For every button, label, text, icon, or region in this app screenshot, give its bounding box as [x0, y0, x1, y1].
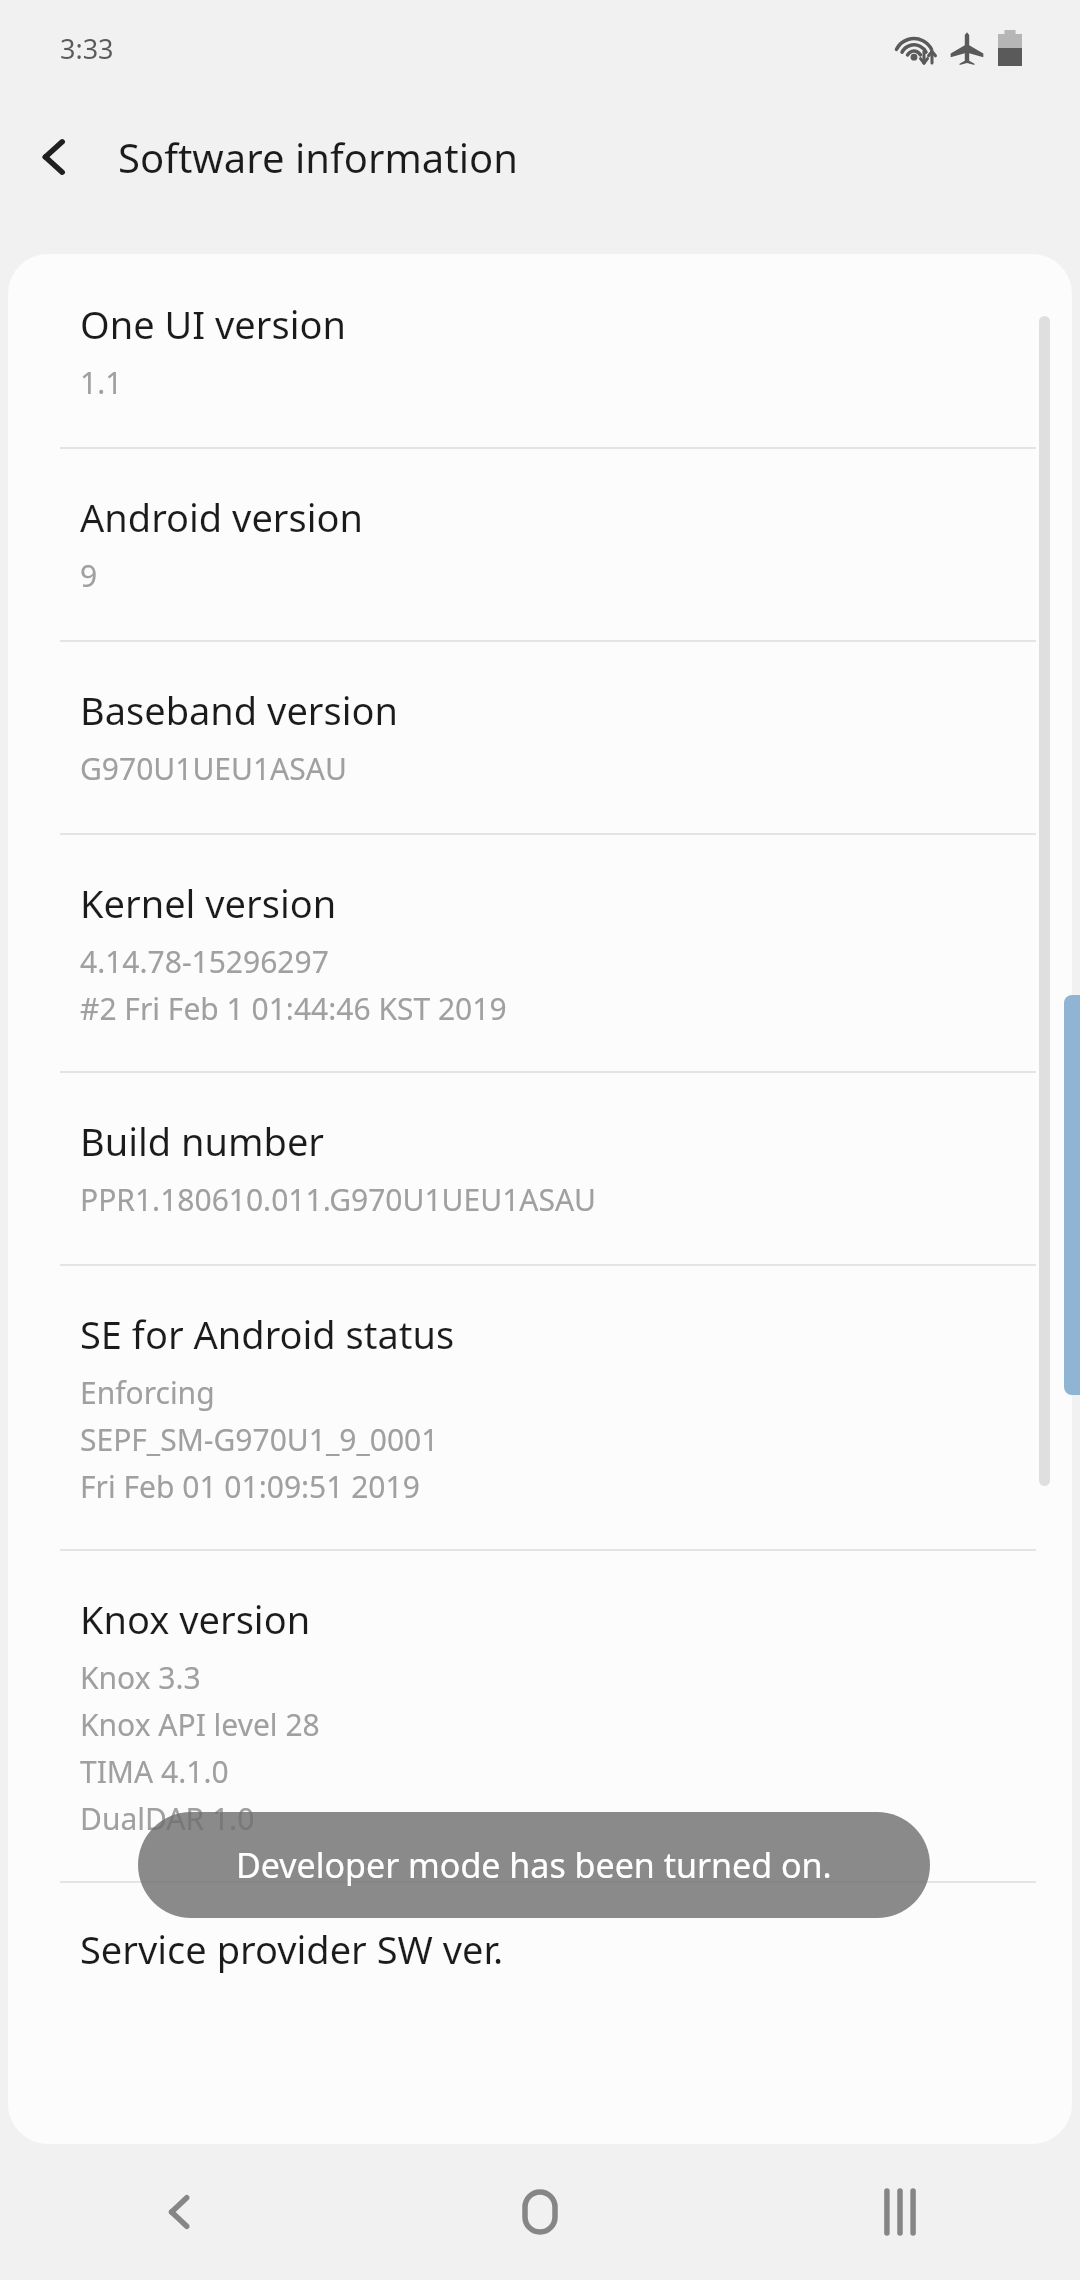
- staticText: Build number: [80, 1115, 325, 1167]
- staticText: 9: [80, 555, 98, 596]
- staticText: 3:33: [60, 30, 114, 67]
- staticText: Kernel version: [80, 877, 337, 929]
- button[interactable]: Kernel version: [8, 835, 1072, 1071]
- staticText: One UI version: [80, 298, 346, 350]
- button[interactable]: SE for Android status: [8, 1266, 1072, 1549]
- staticText: Fri Feb 01 01:09:51 2019: [80, 1466, 420, 1507]
- staticText: Knox API level 28: [80, 1704, 320, 1745]
- staticText: G970U1UEU1ASAU: [80, 748, 347, 789]
- button[interactable]: Recent apps: [720, 2144, 1080, 2280]
- staticText: 4.14.78-15296297: [80, 941, 329, 982]
- staticText: PPR1.180610.011.G970U1UEU1ASAU: [80, 1179, 597, 1220]
- staticText: Android version: [80, 491, 364, 543]
- button[interactable]: Back: [0, 102, 110, 212]
- button[interactable]: One UI version: [8, 254, 1072, 447]
- button[interactable]: Android version: [8, 449, 1072, 640]
- staticText: SE for Android status: [80, 1308, 455, 1360]
- button[interactable]: Back: [0, 2144, 360, 2280]
- staticText: Baseband version: [80, 684, 398, 736]
- staticText: Service provider SW ver.: [80, 1923, 504, 1975]
- staticText: DualDAR 1.0: [80, 1798, 255, 1839]
- staticText: Enforcing: [80, 1372, 215, 1413]
- staticText: Knox version: [80, 1593, 311, 1645]
- staticText: TIMA 4.1.0: [80, 1751, 229, 1792]
- staticText: Knox 3.3: [80, 1657, 201, 1698]
- staticText: 1.1: [80, 362, 123, 403]
- staticText: SEPF_SM-G970U1_9_0001: [80, 1419, 439, 1460]
- button[interactable]: Service provider SW ver.: [8, 1883, 1072, 2048]
- button[interactable]: Home: [360, 2144, 720, 2280]
- button[interactable]: Build number: [8, 1073, 1072, 1264]
- staticText: #2 Fri Feb 1 01:44:46 KST 2019: [80, 988, 507, 1029]
- staticText: Developer mode has been turned on.: [236, 1842, 832, 1888]
- button[interactable]: Baseband version: [8, 642, 1072, 833]
- staticText: Software information: [118, 130, 518, 184]
- button[interactable]: Knox version: [8, 1551, 1072, 1881]
